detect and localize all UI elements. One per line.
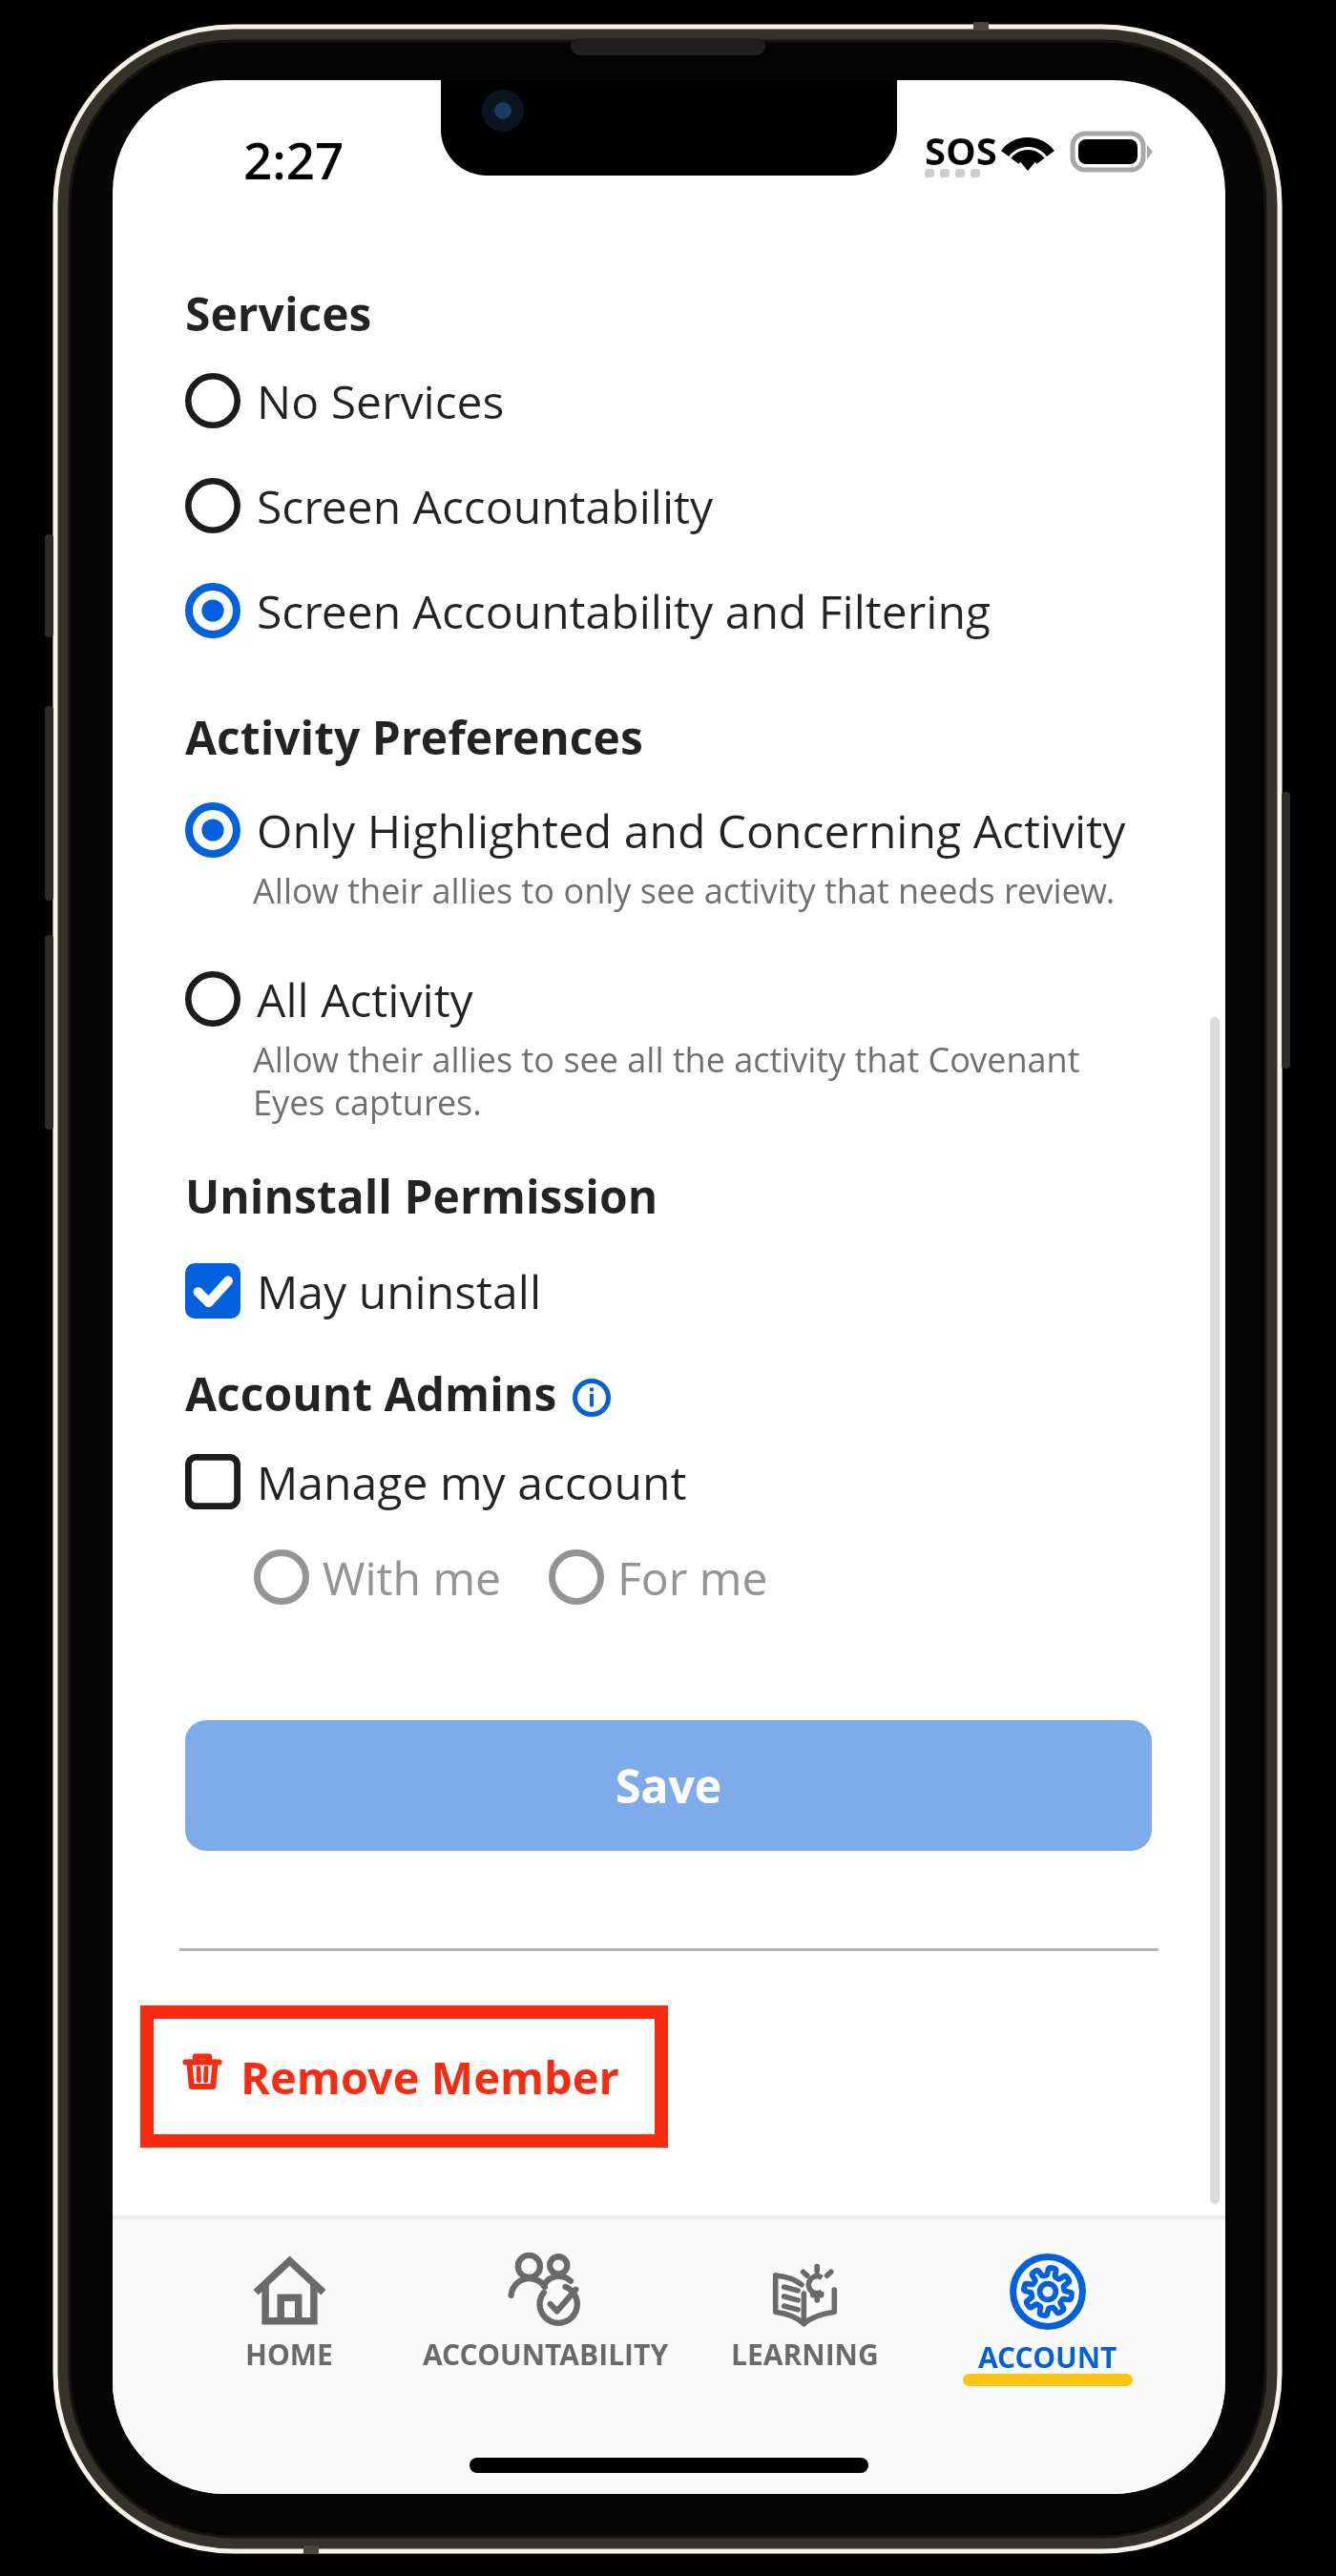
button[interactable]: HOME (160, 2254, 418, 2425)
staticText: SOS (925, 124, 997, 176)
staticText: For me (617, 1547, 768, 1609)
staticText: Account Admins (185, 1362, 557, 1424)
staticText: ACCOUNTABILITY (423, 2335, 669, 2374)
staticText: With me (323, 1547, 502, 1609)
staticText: Save (616, 1755, 722, 1817)
staticText: May uninstall (257, 1260, 542, 1322)
button[interactable]: Manage my account (170, 1436, 1181, 1527)
button[interactable]: Save (185, 1720, 1152, 1851)
staticText: Only Highlighted and Concerning Activity (257, 800, 1126, 862)
button[interactable]: May uninstall (170, 1245, 1181, 1337)
button[interactable]: LEARNING (676, 2254, 933, 2425)
staticText: HOME (245, 2335, 333, 2374)
staticText: Manage my account (257, 1451, 687, 1513)
staticText: Uninstall Permission (185, 1165, 658, 1227)
button[interactable]: All Activity (170, 953, 1181, 1045)
button[interactable]: ACCOUNTABILITY (417, 2254, 675, 2425)
staticText: Screen Accountability and Filtering (257, 580, 992, 642)
staticText: Activity Preferences (185, 706, 643, 768)
button[interactable]: With me (254, 1535, 502, 1619)
staticText: Allow their allies to see all the activi… (253, 1036, 1123, 1126)
staticText: No Services (257, 370, 505, 432)
staticText: LEARNING (731, 2335, 879, 2374)
button[interactable]: ACCOUNT (919, 2254, 1177, 2425)
button[interactable]: Screen Accountability and Filtering (170, 565, 1181, 656)
staticText: All Activity (257, 968, 473, 1030)
staticText: Remove Member (240, 2046, 619, 2108)
button[interactable]: For me (549, 1535, 768, 1619)
button[interactable]: Remove Member (140, 2005, 668, 2148)
staticText: ACCOUNT (978, 2337, 1117, 2377)
button[interactable]: Screen Accountability (170, 460, 1181, 551)
staticText: 2:27 (243, 125, 344, 194)
button[interactable]: Account admins info (573, 1379, 611, 1417)
button[interactable]: Only Highlighted and Concerning Activity (170, 784, 1181, 876)
staticText: Services (185, 282, 372, 344)
staticText: Screen Accountability (257, 475, 714, 537)
button[interactable]: No Services (170, 355, 1181, 447)
staticText: Allow their allies to only see activity … (253, 867, 1123, 914)
